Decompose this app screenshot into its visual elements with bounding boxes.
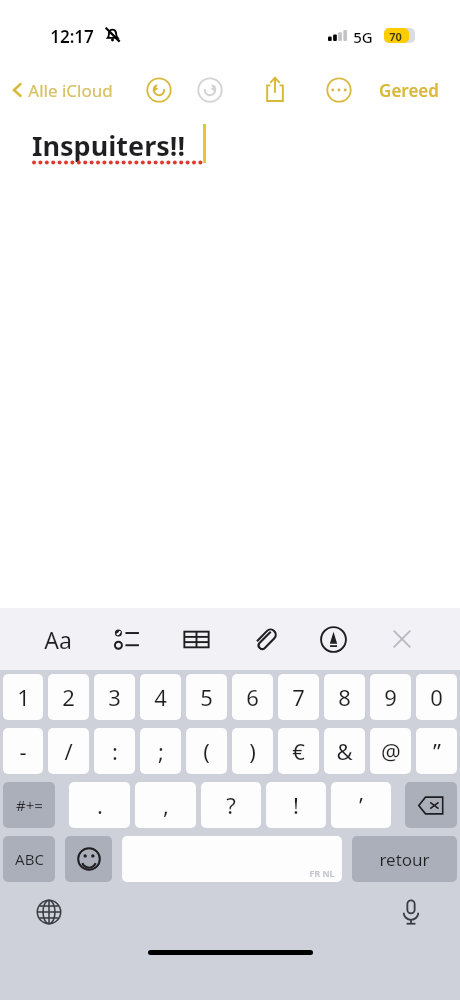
staticText: 2 <box>62 682 75 712</box>
button[interactable]: , <box>135 782 196 828</box>
staticText: 6 <box>246 682 259 712</box>
button[interactable]: Gereed <box>371 68 447 112</box>
staticText: ( <box>203 736 210 766</box>
staticText: ABC <box>15 849 44 869</box>
button[interactable]: Close toolbar <box>374 608 430 670</box>
staticText: 7 <box>292 682 305 712</box>
button[interactable]: ABC <box>3 836 55 882</box>
button[interactable]: Space <box>122 836 342 882</box>
staticText: 12:17 <box>50 25 94 48</box>
staticText: 70 <box>389 29 402 44</box>
staticText: ? <box>226 790 236 820</box>
button[interactable]: ” <box>416 728 457 774</box>
button[interactable]: #+= <box>3 782 55 828</box>
staticText: @ <box>381 736 401 766</box>
button[interactable]: 4 <box>140 674 181 720</box>
button[interactable]: 1 <box>3 674 43 720</box>
button[interactable]: @ <box>370 728 411 774</box>
staticText: 0 <box>430 682 443 712</box>
staticText: #+= <box>16 795 43 815</box>
button[interactable]: & <box>324 728 365 774</box>
staticText: Aa <box>44 624 72 655</box>
staticText: 5G <box>353 27 373 47</box>
staticText: 8 <box>338 682 351 712</box>
button[interactable]: 0 <box>416 674 457 720</box>
button[interactable]: ? <box>201 782 261 828</box>
button[interactable]: 9 <box>370 674 411 720</box>
button[interactable]: 6 <box>232 674 273 720</box>
button[interactable]: Dictate <box>393 894 429 930</box>
button[interactable]: Markup <box>305 608 361 670</box>
button[interactable]: retour <box>352 836 457 882</box>
staticText: ” <box>433 736 441 766</box>
button[interactable]: Alle iCloud <box>8 68 113 112</box>
button[interactable]: ( <box>186 728 227 774</box>
staticText: 4 <box>154 682 167 712</box>
button[interactable]: Insert table <box>168 608 224 670</box>
button[interactable]: Backspace <box>405 782 457 828</box>
staticText: € <box>292 736 305 766</box>
button[interactable]: Emoji keyboard <box>65 836 112 882</box>
button[interactable]: 8 <box>324 674 365 720</box>
staticText: 1 <box>17 682 30 712</box>
button[interactable]: 7 <box>278 674 319 720</box>
button[interactable]: : <box>94 728 135 774</box>
button[interactable]: More options <box>326 77 352 103</box>
staticText: Alle iCloud <box>28 79 113 102</box>
button[interactable]: . <box>69 782 130 828</box>
button[interactable]: Change keyboard <box>31 894 67 930</box>
staticText: ) <box>249 736 256 766</box>
button[interactable]: Redo <box>197 77 223 103</box>
staticText: Inspuiters!! <box>32 127 185 164</box>
button[interactable]: 3 <box>94 674 135 720</box>
button[interactable]: Share <box>261 75 289 103</box>
button[interactable]: ) <box>232 728 273 774</box>
button[interactable]: Text format <box>30 608 86 670</box>
staticText: . <box>97 790 103 820</box>
staticText: / <box>64 736 73 766</box>
staticText: retour <box>379 848 430 871</box>
staticText: 9 <box>384 682 397 712</box>
button[interactable]: / <box>48 728 89 774</box>
button[interactable]: - <box>3 728 43 774</box>
button[interactable]: Attach file <box>236 608 292 670</box>
button[interactable]: ’ <box>331 782 391 828</box>
staticText: FR NL <box>309 867 335 879</box>
button[interactable]: 2 <box>48 674 89 720</box>
staticText: : <box>112 736 118 766</box>
button[interactable]: ; <box>140 728 181 774</box>
button[interactable]: € <box>278 728 319 774</box>
staticText: - <box>19 736 27 766</box>
staticText: & <box>336 736 353 766</box>
staticText: ! <box>293 790 299 820</box>
button[interactable]: ! <box>266 782 326 828</box>
staticText: 3 <box>108 682 121 712</box>
staticText: Gereed <box>379 79 439 102</box>
staticText: ; <box>158 736 164 766</box>
staticText: ’ <box>359 790 363 820</box>
button[interactable]: Checklist <box>99 608 155 670</box>
button[interactable]: 5 <box>186 674 227 720</box>
staticText: 5 <box>200 682 213 712</box>
staticText: , <box>163 790 169 820</box>
button[interactable]: Undo <box>146 77 172 103</box>
